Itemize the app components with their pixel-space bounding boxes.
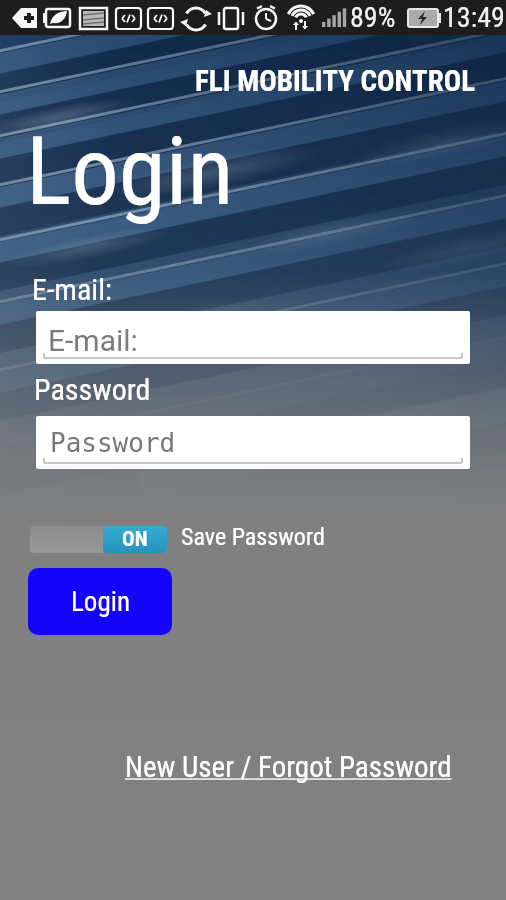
staticText: FLI MOBILITY CONTROL <box>195 64 476 98</box>
staticText: Password <box>50 428 176 458</box>
staticText: E-mail: <box>48 323 138 358</box>
button[interactable]: Password <box>36 416 470 469</box>
staticText: ON <box>122 527 148 552</box>
staticText: Login <box>71 586 130 618</box>
button[interactable]: E-mail: <box>36 311 470 364</box>
staticText: 89% <box>350 1 396 34</box>
staticText: Login <box>26 116 234 227</box>
staticText: Save Password <box>181 523 325 551</box>
staticText: 13:49 <box>443 1 505 34</box>
button[interactable]: New User / Forgot Password <box>125 750 452 784</box>
staticText: Password <box>34 372 151 407</box>
button[interactable]: Login <box>28 568 172 635</box>
button[interactable]: ON <box>30 526 167 553</box>
staticText: E-mail: <box>32 272 113 307</box>
